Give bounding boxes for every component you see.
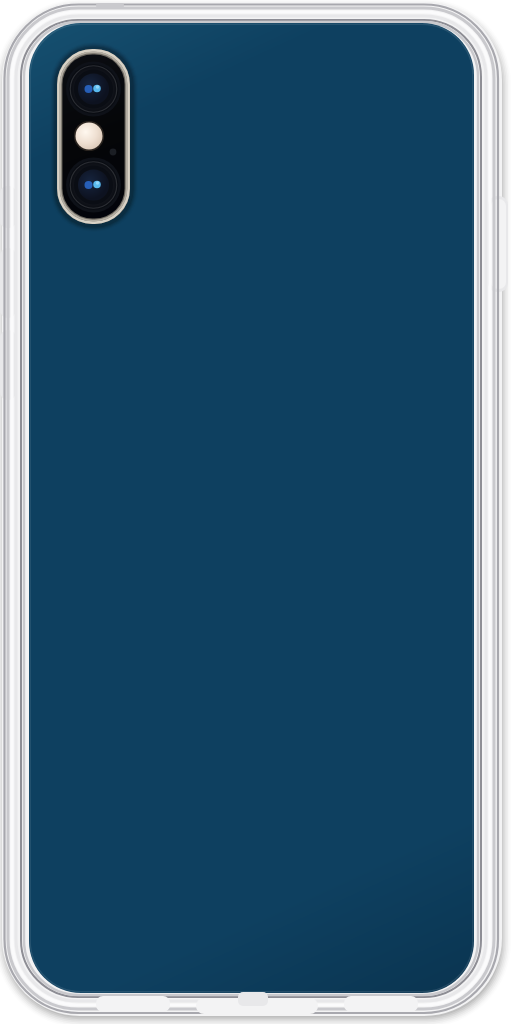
button[interactable]: Navy blue phone case product photo [0, 0, 513, 1024]
